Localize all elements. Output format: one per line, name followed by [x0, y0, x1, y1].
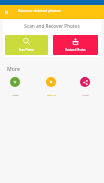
- staticText: Scan Photos: [19, 48, 34, 52]
- button[interactable]: Scan Photos: [5, 35, 48, 55]
- staticText: Clean: [12, 93, 19, 96]
- button[interactable]: Rate Us: [40, 77, 62, 96]
- staticText: Share: [82, 93, 89, 96]
- staticText: Recover deleted photos: [18, 8, 61, 13]
- staticText: Rate Us: [47, 93, 56, 96]
- staticText: More: [7, 65, 20, 72]
- button[interactable]: Restored Photos: [53, 35, 98, 55]
- staticText: Restored Photos: [65, 48, 86, 52]
- button[interactable]: Menu: [2, 8, 10, 16]
- button[interactable]: Clean: [4, 77, 26, 96]
- staticText: Scan and Recover Photos: [3, 23, 101, 29]
- button[interactable]: Share: [74, 77, 96, 96]
